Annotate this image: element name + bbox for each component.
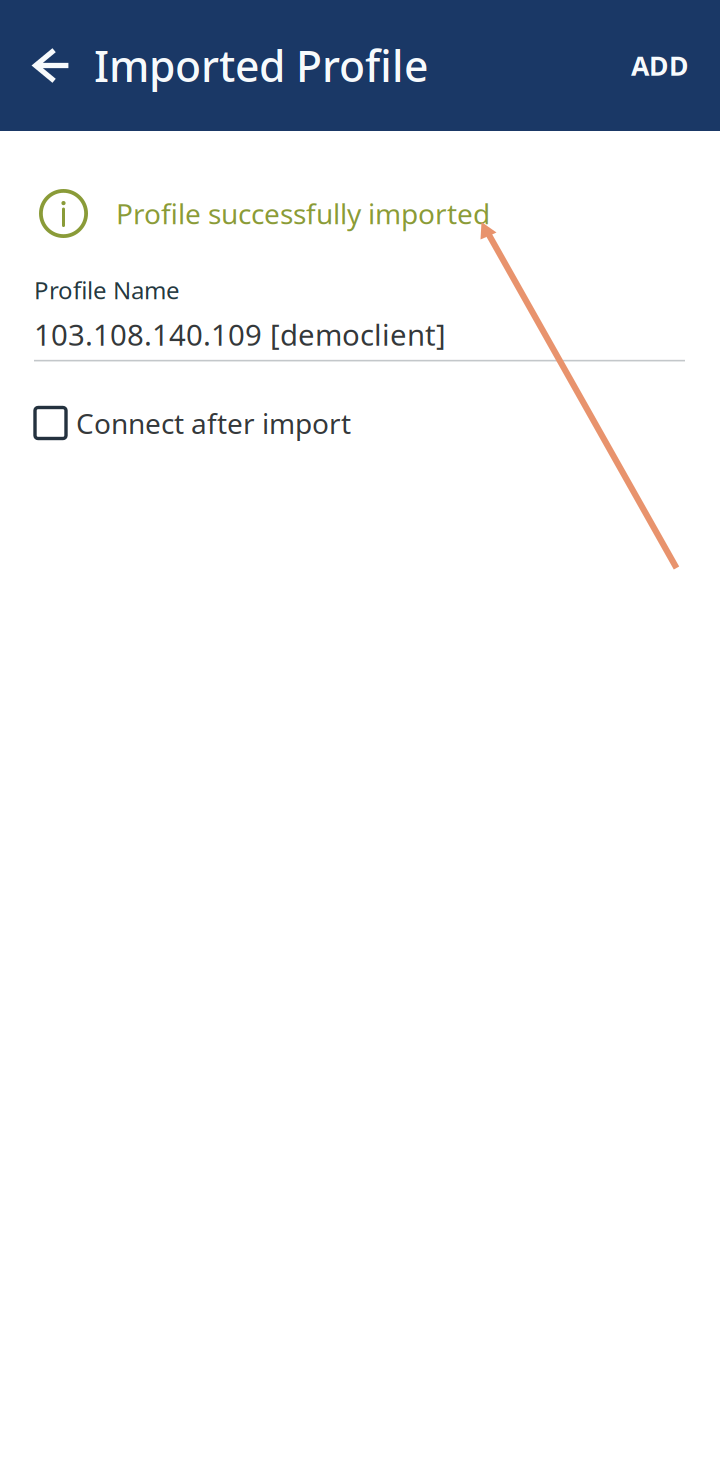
staticText: Imported Profile — [94, 37, 428, 94]
button[interactable]: Profile Name — [0, 238, 720, 361]
staticText: Connect after import — [76, 404, 351, 442]
staticText: 103.108.140.109 [democlient] — [34, 315, 446, 354]
button[interactable]: Connect after import — [0, 361, 720, 442]
staticText: Profile successfully imported — [116, 195, 490, 232]
button[interactable]: Back — [0, 22, 94, 108]
staticText: Profile Name — [34, 274, 180, 306]
staticText: ADD — [631, 48, 689, 83]
button[interactable]: ADD — [601, 22, 720, 109]
